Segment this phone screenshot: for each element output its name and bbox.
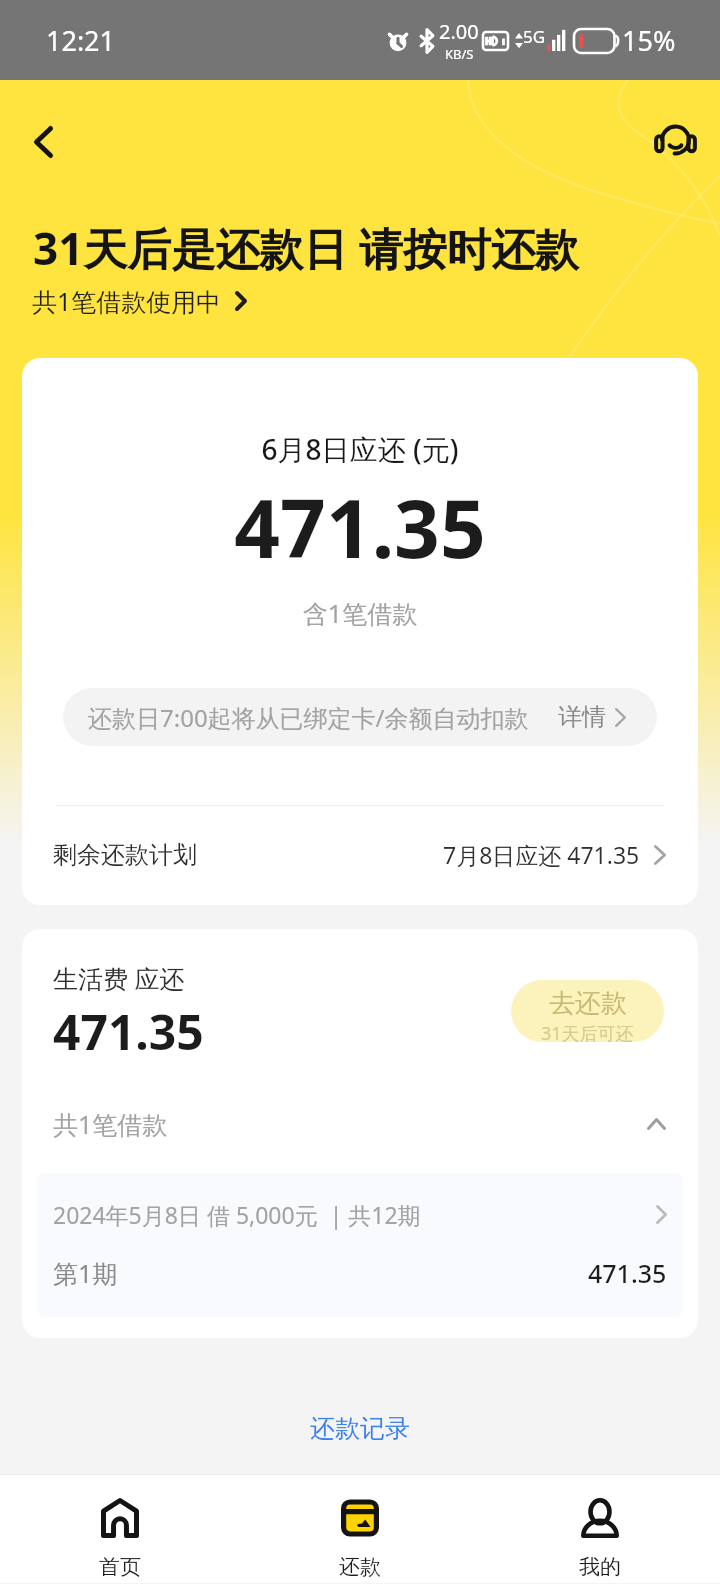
button[interactable]: 还款 bbox=[240, 1475, 480, 1580]
staticText: 12:21 bbox=[46, 22, 116, 59]
button[interactable]: 去还款 bbox=[511, 980, 664, 1042]
staticText: 去还款 bbox=[549, 987, 627, 1020]
staticText: 首页 bbox=[99, 1554, 141, 1580]
staticText: 共1笔借款 bbox=[53, 1107, 168, 1141]
staticText: KB/S bbox=[445, 45, 474, 63]
staticText: 详情 bbox=[558, 702, 606, 732]
staticText: 2024年5月8日 借 5,000元 | 共12期 bbox=[53, 1199, 421, 1230]
staticText: 471.35 bbox=[53, 999, 204, 1064]
staticText: 我的 bbox=[579, 1554, 621, 1580]
staticText: 还款日7:00起将从已绑定卡/余额自动扣款 bbox=[88, 701, 529, 734]
staticText: 生活费 应还 bbox=[53, 961, 185, 995]
button[interactable]: 共1笔借款 bbox=[22, 1107, 698, 1141]
button[interactable]: 剩余还款计划 bbox=[22, 806, 698, 905]
staticText: 5G bbox=[523, 25, 546, 48]
staticText: 第1期 bbox=[53, 1256, 118, 1290]
button[interactable]: Back bbox=[12, 111, 74, 173]
staticText: 含1笔借款 bbox=[22, 596, 698, 630]
button[interactable]: 共1笔借款使用中 bbox=[32, 284, 247, 318]
staticText: 15% bbox=[622, 22, 676, 59]
staticText: 7月8日应还 471.35 bbox=[443, 839, 640, 870]
button[interactable]: 我的 bbox=[480, 1475, 720, 1580]
staticText: 6月8日应还 (元) bbox=[22, 430, 698, 468]
staticText: 471.35 bbox=[22, 472, 698, 581]
staticText: 剩余还款计划 bbox=[53, 840, 197, 870]
staticText: 31天后可还 bbox=[541, 1021, 634, 1042]
button[interactable]: 还款日7:00起将从已绑定卡/余额自动扣款 bbox=[63, 688, 657, 746]
staticText: 共1笔借款使用中 bbox=[32, 284, 222, 318]
button[interactable]: 还款记录 bbox=[0, 1413, 720, 1444]
button[interactable]: 2024年5月8日 借 5,000元 | 共12期 bbox=[53, 1199, 667, 1230]
staticText: 471.35 bbox=[588, 1256, 667, 1290]
button[interactable]: 首页 bbox=[0, 1475, 240, 1580]
staticText: 31天后是还款日 请按时还款 bbox=[33, 218, 579, 278]
staticText: 还款 bbox=[339, 1554, 381, 1580]
button[interactable]: Customer service bbox=[644, 111, 706, 173]
staticText: 还款记录 bbox=[310, 1413, 410, 1444]
staticText: 2.00 bbox=[439, 18, 479, 45]
